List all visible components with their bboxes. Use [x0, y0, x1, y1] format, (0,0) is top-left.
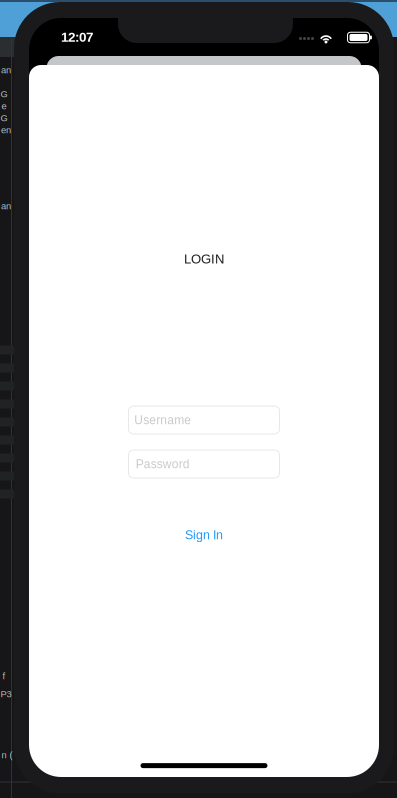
staticText: Password — [136, 457, 190, 471]
staticText: an — [1, 201, 11, 211]
staticText: LOGIN — [184, 252, 224, 266]
staticText: n ( — [1, 750, 12, 760]
staticText: G — [0, 113, 7, 123]
button[interactable]: Password — [128, 450, 279, 478]
button[interactable]: Sign In — [169, 525, 239, 545]
staticText: G — [0, 89, 7, 99]
staticText: f — [2, 671, 5, 681]
staticText: an — [1, 65, 11, 75]
button[interactable]: Username — [128, 406, 279, 434]
staticText: 12:07 — [61, 29, 93, 44]
staticText: Username — [134, 413, 191, 427]
staticText: Sign In — [185, 528, 223, 542]
staticText: en — [1, 125, 11, 135]
staticText: P3 — [0, 689, 11, 699]
staticText: e — [1, 101, 6, 111]
